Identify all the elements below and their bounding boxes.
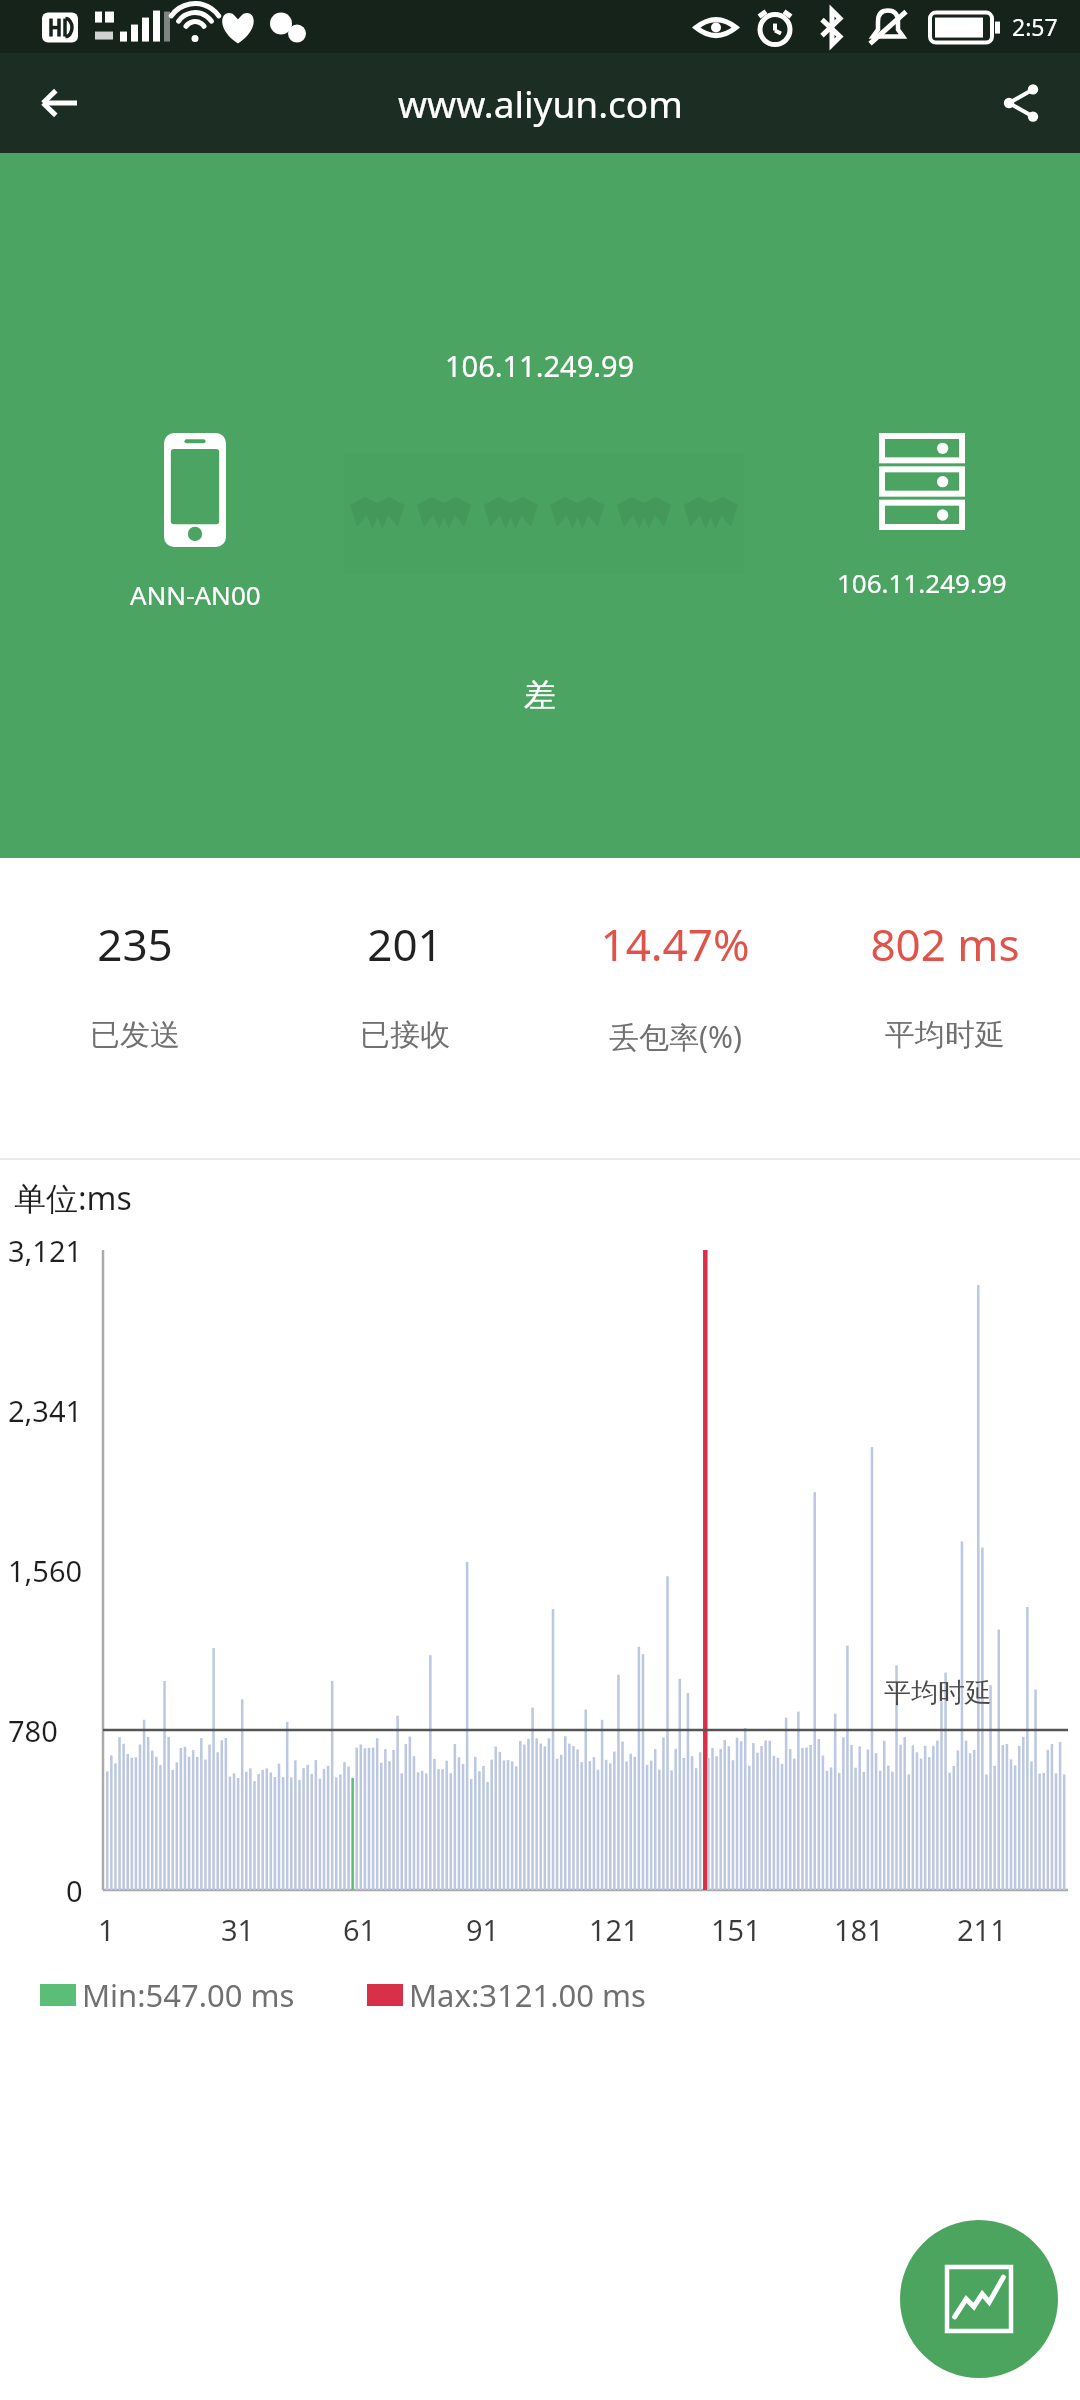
staticText: 已接收 [360,1016,450,1054]
staticText: 235 [97,914,173,974]
staticText: 91 [466,1910,500,1949]
staticText: 61 [343,1910,377,1949]
button[interactable]: 235 [0,858,270,1158]
button[interactable]: Share [988,70,1054,136]
staticText: 丢包率(%) [609,1016,742,1057]
staticText: 151 [711,1910,761,1949]
staticText: Min:547.00 ms [82,1974,295,2016]
staticText: www.aliyun.com [398,78,683,128]
staticText: 差 [524,675,556,715]
staticText: 单位:ms [14,1176,132,1220]
button[interactable]: Max:3121.00 ms [367,1974,646,2016]
staticText: 2,341 [8,1391,83,1430]
staticText: 106.11.249.99 [445,346,635,385]
button[interactable]: Show chart [900,2220,1058,2378]
staticText: 802 ms [870,914,1020,974]
staticText: 780 [8,1711,58,1750]
staticText: 平均时延 [885,1016,1005,1054]
staticText: 0 [66,1871,83,1910]
staticText: 平均时延 [884,1676,992,1710]
staticText: 31 [221,1910,255,1949]
button[interactable]: 201 [270,858,540,1158]
staticText: Max:3121.00 ms [409,1974,646,2016]
staticText: 181 [834,1910,884,1949]
staticText: 106.11.249.99 [837,565,1007,600]
staticText: 14.47% [600,914,750,974]
button[interactable]: Back [26,70,92,136]
staticText: 201 [367,914,443,974]
staticText: 211 [957,1910,1007,1949]
button[interactable]: 14.47% [540,858,810,1158]
staticText: 3,121 [8,1231,83,1270]
staticText: 1,560 [8,1551,83,1590]
staticText: 121 [589,1910,639,1949]
staticText: 2:57 [1012,11,1058,42]
button[interactable]: 802 ms [810,858,1080,1158]
button[interactable]: Min:547.00 ms [40,1974,295,2016]
staticText: ANN-AN00 [130,577,261,612]
staticText: 1 [98,1910,115,1949]
staticText: 已发送 [90,1016,180,1054]
